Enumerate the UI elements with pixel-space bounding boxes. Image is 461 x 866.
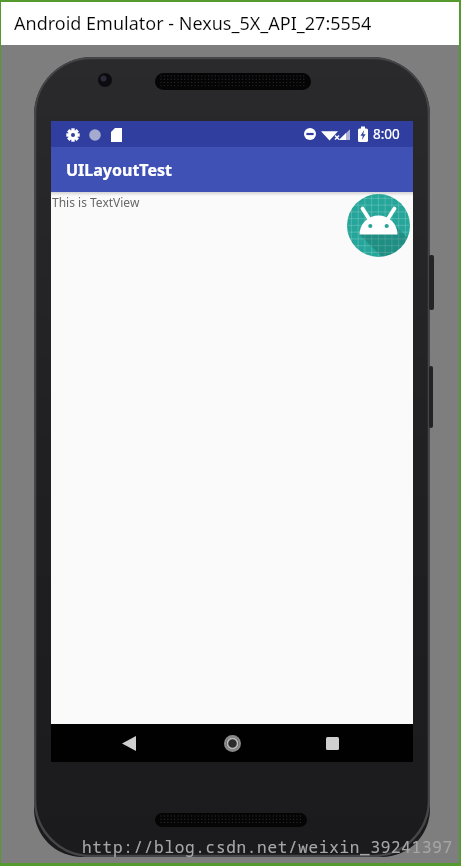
staticText: This is TextView [52,194,140,210]
button[interactable] [115,729,143,757]
button[interactable] [318,729,346,757]
staticText: UILayoutTest [66,159,172,181]
staticText: http://blog.csdn.net/weixin_39241397 [82,836,453,858]
staticText: 8:00 [373,125,400,143]
staticText: Android Emulator - Nexus_5X_API_27:5554 [14,11,372,36]
button[interactable] [347,194,410,257]
button[interactable] [218,729,246,757]
